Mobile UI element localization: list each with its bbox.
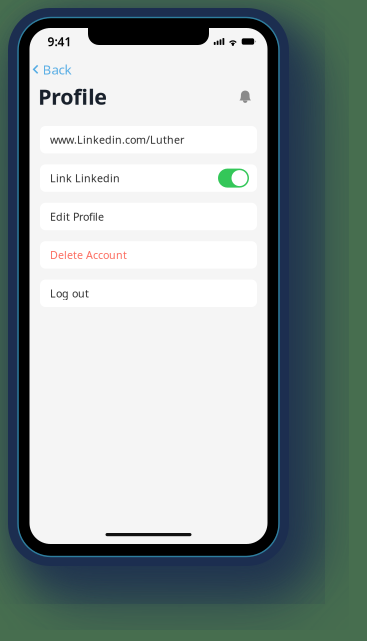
- button[interactable]: Edit Profile: [40, 203, 257, 230]
- staticText: 9:41: [47, 33, 71, 49]
- staticText: Profile: [38, 82, 107, 111]
- staticText: Link Linkedin: [50, 171, 120, 185]
- button[interactable]: www.Linkedin.com/Luther: [40, 126, 257, 153]
- staticText: www.Linkedin.com/Luther: [50, 133, 184, 147]
- staticText: Back: [42, 60, 71, 78]
- button[interactable]: Log out: [40, 280, 257, 307]
- button[interactable]: Notifications: [235, 86, 255, 106]
- staticText: Edit Profile: [50, 209, 104, 224]
- staticText: Delete Account: [50, 248, 127, 262]
- button[interactable]: Back: [30, 58, 77, 80]
- button[interactable]: Delete Account: [40, 241, 257, 269]
- button[interactable]: Link Linkedin: [40, 164, 257, 192]
- staticText: Log out: [50, 286, 89, 300]
